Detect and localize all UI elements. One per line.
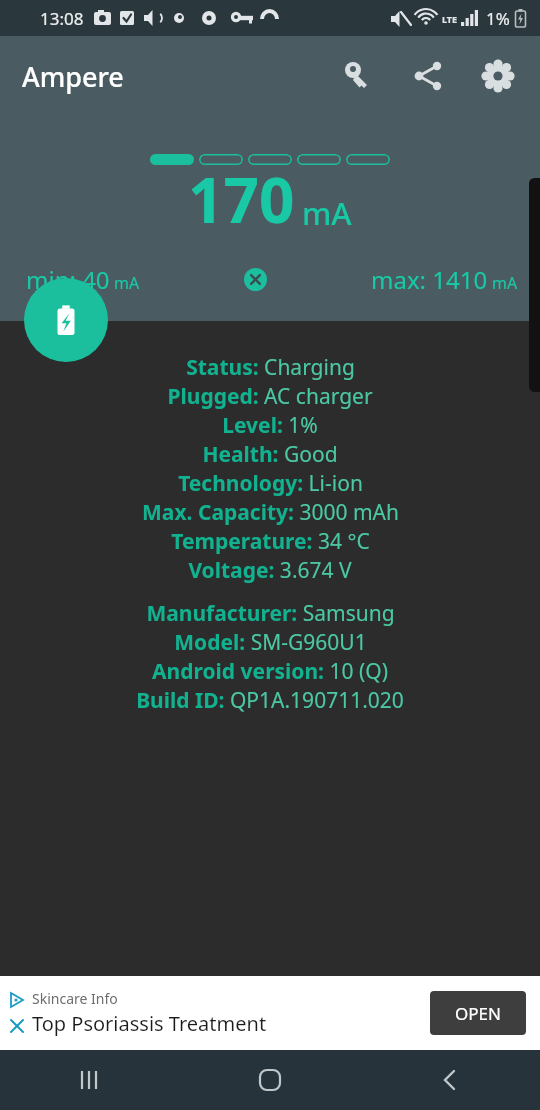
staticText: mA bbox=[114, 272, 140, 294]
button[interactable]: Max. Capacity: 3000 mAh bbox=[0, 498, 540, 527]
button[interactable]: Technology: Li-ion bbox=[0, 469, 540, 498]
staticText: Level: 1% bbox=[222, 411, 318, 440]
staticText: 170 bbox=[188, 157, 295, 241]
button[interactable] bbox=[297, 154, 341, 165]
button[interactable]: Back bbox=[360, 1050, 540, 1110]
button[interactable]: Settings bbox=[474, 52, 522, 100]
button[interactable]: Level: 1% bbox=[0, 411, 540, 440]
button[interactable]: Home bbox=[180, 1050, 360, 1110]
button[interactable]: Plugged: AC charger bbox=[0, 382, 540, 411]
staticText: mA bbox=[302, 192, 352, 234]
staticText: Model: SM-G960U1 bbox=[174, 628, 367, 657]
staticText: Manufacturer: Samsung bbox=[146, 599, 395, 628]
button[interactable]: Build ID: QP1A.190711.020 bbox=[0, 686, 540, 715]
button[interactable]: Temperature: 34 °C bbox=[0, 527, 540, 556]
button[interactable]: Status: Charging bbox=[0, 353, 540, 382]
staticText: mA bbox=[492, 272, 518, 294]
staticText: LTE bbox=[442, 13, 458, 25]
button[interactable]: Share bbox=[404, 52, 452, 100]
staticText: Status: Charging bbox=[186, 353, 355, 382]
staticText: Health: Good bbox=[202, 440, 338, 469]
staticText: Max. Capacity: 3000 mAh bbox=[142, 498, 399, 527]
staticText: Android version: 10 (Q) bbox=[152, 657, 388, 686]
staticText: min: 40 bbox=[26, 263, 110, 296]
button[interactable]: Measure bbox=[24, 278, 108, 362]
staticText: Skincare Info bbox=[32, 989, 118, 1008]
button[interactable]: Recents bbox=[0, 1050, 180, 1110]
button[interactable] bbox=[150, 154, 194, 165]
staticText: max: 1410 bbox=[371, 263, 488, 296]
staticText: Build ID: QP1A.190711.020 bbox=[136, 686, 404, 715]
button[interactable]: Manufacturer: Samsung bbox=[0, 599, 540, 628]
button[interactable] bbox=[248, 154, 292, 165]
button[interactable]: Model: SM-G960U1 bbox=[0, 628, 540, 657]
staticText: 1% bbox=[486, 7, 510, 30]
button[interactable] bbox=[199, 154, 243, 165]
button[interactable]: Voltage: 3.674 V bbox=[0, 556, 540, 585]
staticText: Ampere bbox=[22, 58, 124, 95]
staticText: OPEN bbox=[455, 1002, 501, 1025]
staticText: Technology: Li-ion bbox=[178, 469, 363, 498]
button[interactable]: Health: Good bbox=[0, 440, 540, 469]
staticText: Plugged: AC charger bbox=[167, 382, 373, 411]
staticText: Top Psoriassis Treatment bbox=[32, 1010, 267, 1037]
button[interactable]: Reset bbox=[243, 267, 267, 291]
button[interactable]: OPEN bbox=[430, 991, 526, 1035]
button[interactable] bbox=[346, 154, 390, 165]
staticText: Temperature: 34 °C bbox=[171, 527, 370, 556]
staticText: Voltage: 3.674 V bbox=[188, 556, 352, 585]
button[interactable]: Pro key bbox=[334, 52, 382, 100]
staticText: 13:08 bbox=[40, 7, 84, 30]
button[interactable]: Android version: 10 (Q) bbox=[0, 657, 540, 686]
